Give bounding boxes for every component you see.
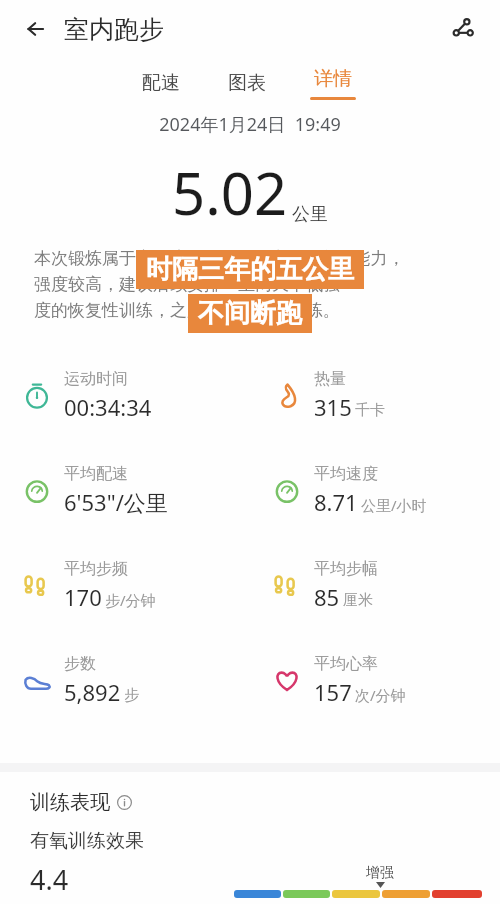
staticText: 本次锻炼属于高强度有氧能力…该阶段心肺能力， [34, 246, 405, 269]
staticText: 平均步频 [64, 559, 128, 579]
staticText: 室内跑步 [64, 14, 164, 45]
button[interactable]: Share [442, 8, 484, 50]
staticText: 详情 [314, 67, 352, 91]
staticText: 6'53"/公里 [64, 487, 168, 517]
staticText: 2024年1月24日 19:49 [0, 112, 500, 137]
button[interactable]: 配速 [136, 67, 186, 99]
staticText: 平均心率 [314, 654, 378, 674]
button[interactable]: 平均心率 [250, 654, 500, 707]
staticText: 平均步幅 [314, 559, 378, 579]
staticText: 平均速度 [314, 464, 378, 484]
button[interactable]: 热量 [250, 369, 500, 422]
button[interactable]: 平均配速 [0, 464, 250, 517]
staticText: 不间断跑 [198, 297, 302, 330]
staticText: 图表 [228, 71, 266, 95]
staticText: 训练表现 [30, 790, 110, 815]
staticText: 5,892 [64, 677, 121, 707]
staticText: 157 [314, 677, 352, 707]
staticText: 170 [64, 582, 102, 612]
staticText: 次/分钟 [355, 685, 406, 705]
button[interactable]: 平均步频 [0, 559, 250, 612]
staticText: 步/分钟 [105, 590, 156, 610]
staticText: 热量 [314, 369, 346, 389]
staticText: 强度较高，建议后续安排一至两天中低强 [34, 274, 340, 295]
staticText: 步数 [64, 654, 96, 674]
staticText: 5.02 [172, 153, 288, 232]
staticText: 平均配速 [64, 464, 128, 484]
button[interactable]: 步数 [0, 654, 250, 707]
button[interactable]: 图表 [222, 67, 272, 99]
button[interactable]: Back [16, 9, 56, 49]
staticText: 度的恢复性训练，之后再开展日常训练。 [34, 300, 340, 321]
staticText: 配速 [142, 71, 180, 95]
staticText: 85 [314, 582, 340, 612]
staticText: 厘米 [343, 591, 373, 610]
button[interactable]: 运动时间 [0, 369, 250, 422]
staticText: 8.71 [314, 487, 358, 517]
staticText: 315 [314, 392, 352, 422]
staticText: 有氧训练效果 [30, 829, 144, 853]
button[interactable]: 平均步幅 [250, 559, 500, 612]
button[interactable]: 详情 [306, 67, 360, 100]
button[interactable]: 平均速度 [250, 464, 500, 517]
staticText: 千卡 [355, 401, 385, 420]
staticText: 增强 [366, 864, 394, 882]
staticText: 4.4 [30, 861, 69, 898]
staticText: 步 [124, 686, 139, 705]
staticText: 时隔三年的五公里 [146, 253, 354, 286]
staticText: 00:34:34 [64, 392, 152, 422]
button[interactable]: 训练表现 [30, 790, 500, 815]
staticText: 公里 [292, 203, 328, 226]
staticText: 公里/小时 [361, 495, 427, 515]
staticText: 运动时间 [64, 369, 128, 389]
